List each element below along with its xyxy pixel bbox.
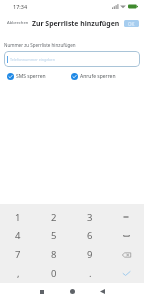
other: Signal [112, 4, 118, 9]
staticText: Telefonnummer eingeben [10, 57, 55, 62]
button[interactable]: Recents [31, 283, 53, 300]
staticText: 8 [51, 248, 57, 261]
button[interactable]: Space [108, 226, 144, 245]
button[interactable]: 1 [0, 208, 36, 226]
button[interactable]: . [72, 264, 108, 283]
button[interactable]: Minus [108, 208, 144, 226]
staticText: 5 [51, 229, 57, 242]
button[interactable]: Telefonnummer eingeben [4, 51, 140, 67]
staticText: Abbrechen [7, 20, 29, 26]
staticText: Nummer zu Sperrliste hinzufügen [4, 42, 76, 48]
other: Done [122, 270, 131, 277]
button[interactable]: Back [91, 283, 113, 300]
staticText: Anrufe sperren [80, 73, 116, 80]
button[interactable]: Done [108, 264, 144, 283]
button[interactable]: 8 [36, 245, 72, 264]
button[interactable]: 7 [0, 245, 36, 264]
button[interactable]: SMS sperren [7, 73, 46, 80]
other: Backspace [122, 252, 131, 258]
staticText: 4 [15, 229, 21, 242]
button[interactable]: 5 [36, 226, 72, 245]
staticText: . [89, 267, 92, 280]
button[interactable]: 2 [36, 208, 72, 226]
staticText: SMS sperren [16, 73, 46, 80]
button[interactable]: 9 [72, 245, 108, 264]
staticText: 1 [15, 211, 21, 224]
button[interactable]: Backspace [108, 245, 144, 264]
button[interactable]: Anrufe sperren [71, 73, 116, 80]
other: Space [123, 232, 130, 239]
staticText: 3 [87, 211, 93, 224]
staticText: 9 [87, 248, 93, 261]
button[interactable]: 0 [36, 264, 72, 283]
staticText: OK [128, 21, 135, 27]
other: Battery [128, 4, 138, 9]
staticText: 0 [51, 267, 57, 280]
staticText: Zur Sperrliste hinzufügen [32, 19, 120, 28]
button[interactable]: Home [61, 283, 83, 300]
button[interactable]: , [0, 264, 36, 283]
other: Minus [123, 214, 129, 220]
button[interactable]: 4 [0, 226, 36, 245]
staticText: 2 [51, 211, 57, 224]
other: Wifi [120, 4, 126, 9]
button[interactable]: OK [124, 20, 139, 27]
staticText: 7 [15, 248, 21, 261]
staticText: 17:34 [13, 3, 28, 10]
button[interactable]: 3 [72, 208, 108, 226]
button[interactable]: Abbrechen [3, 17, 32, 29]
staticText: , [17, 267, 20, 280]
button[interactable]: 6 [72, 226, 108, 245]
staticText: 6 [87, 229, 93, 242]
